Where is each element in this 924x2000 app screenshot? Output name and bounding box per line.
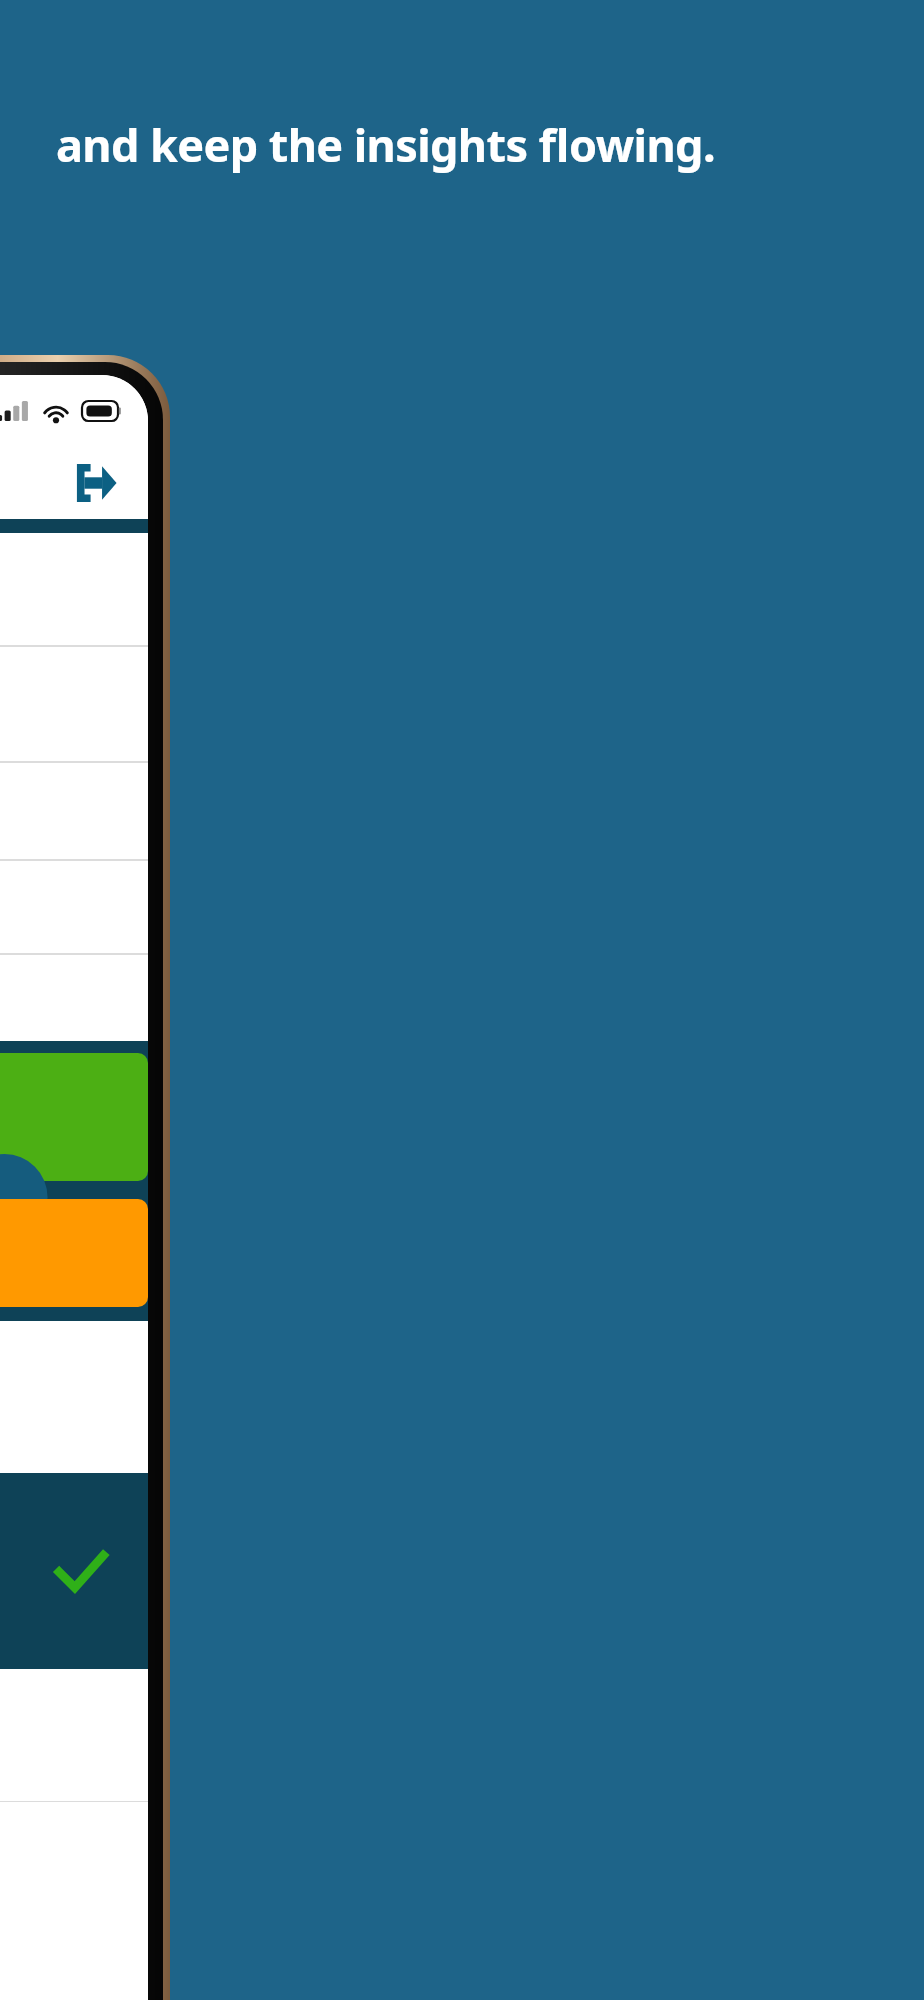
staticText: and keep the insights flowing. — [56, 114, 715, 175]
button[interactable]: Log out — [68, 456, 122, 510]
button[interactable] — [0, 1053, 148, 1181]
button[interactable] — [0, 1199, 148, 1307]
